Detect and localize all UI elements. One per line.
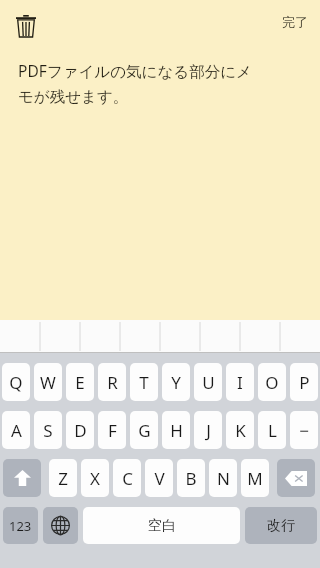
- button[interactable]: V: [145, 459, 173, 497]
- staticText: 123: [9, 517, 32, 535]
- staticText: 完了: [282, 14, 308, 30]
- button[interactable]: D: [66, 411, 94, 449]
- button[interactable]: L: [258, 411, 286, 449]
- button[interactable]: 123: [3, 507, 38, 544]
- button[interactable]: Y: [162, 363, 190, 401]
- button[interactable]: R: [98, 363, 126, 401]
- staticText: 改行: [267, 517, 295, 535]
- staticText: C: [122, 467, 133, 490]
- staticText: Z: [58, 467, 68, 490]
- staticText: W: [40, 371, 56, 394]
- button[interactable]: 改行: [245, 507, 317, 544]
- staticText: 空白: [148, 517, 176, 535]
- button[interactable]: X: [81, 459, 109, 497]
- button[interactable]: Delete: [10, 10, 42, 42]
- staticText: X: [90, 467, 100, 490]
- button[interactable]: G: [130, 411, 158, 449]
- staticText: N: [217, 467, 230, 490]
- button[interactable]: I: [226, 363, 254, 401]
- staticText: G: [138, 419, 151, 442]
- button[interactable]: F: [98, 411, 126, 449]
- button[interactable]: U: [194, 363, 222, 401]
- staticText: I: [237, 371, 243, 394]
- staticText: T: [139, 371, 149, 394]
- button[interactable]: T: [130, 363, 158, 401]
- button[interactable]: P: [290, 363, 318, 401]
- staticText: S: [43, 419, 53, 442]
- staticText: A: [11, 419, 22, 442]
- button[interactable]: M: [241, 459, 269, 497]
- staticText: M: [247, 467, 263, 490]
- staticText: B: [185, 467, 197, 490]
- button[interactable]: E: [66, 363, 94, 401]
- staticText: V: [154, 467, 165, 490]
- staticText: Q: [9, 371, 23, 394]
- staticText: E: [75, 371, 85, 394]
- button[interactable]: A: [2, 411, 30, 449]
- staticText: F: [108, 419, 117, 442]
- button[interactable]: J: [194, 411, 222, 449]
- button[interactable]: Z: [49, 459, 77, 497]
- button[interactable]: Change keyboard language: [43, 507, 78, 544]
- button[interactable]: B: [177, 459, 205, 497]
- staticText: PDFファイルの気になる部分にメ モが残せます。: [18, 60, 252, 106]
- button[interactable]: 空白: [83, 507, 240, 544]
- staticText: U: [202, 371, 215, 394]
- button[interactable]: −: [290, 411, 318, 449]
- button[interactable]: H: [162, 411, 190, 449]
- staticText: −: [299, 419, 309, 442]
- staticText: D: [74, 419, 87, 442]
- staticText: P: [299, 371, 310, 394]
- button[interactable]: 完了: [278, 12, 312, 32]
- staticText: Y: [171, 371, 181, 394]
- staticText: K: [235, 419, 246, 442]
- staticText: L: [268, 419, 277, 442]
- button[interactable]: S: [34, 411, 62, 449]
- button[interactable]: N: [209, 459, 237, 497]
- button[interactable]: K: [226, 411, 254, 449]
- staticText: H: [170, 419, 183, 442]
- button[interactable]: O: [258, 363, 286, 401]
- button[interactable]: Q: [2, 363, 30, 401]
- button[interactable]: C: [113, 459, 141, 497]
- staticText: R: [107, 371, 118, 394]
- button[interactable]: Backspace: [277, 459, 315, 497]
- button[interactable]: W: [34, 363, 62, 401]
- staticText: J: [206, 419, 211, 442]
- staticText: O: [265, 371, 279, 394]
- button[interactable]: Shift: [3, 459, 41, 497]
